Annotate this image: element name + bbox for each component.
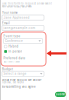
staticText: Hybrid (8, 45, 18, 48)
staticText: Your name (2, 11, 18, 14)
staticText: jane@example.com (4, 26, 36, 30)
staticText: Budget (2, 68, 13, 71)
staticText: Event type (3, 35, 20, 38)
staticText: By submitting you agree (2, 85, 36, 88)
staticText: dd / mm / yyyy (3, 60, 19, 63)
staticText: Optional, but helpful (2, 81, 24, 84)
button[interactable]: jane@example.com (2, 25, 44, 31)
button[interactable]: Hybrid (4, 45, 41, 48)
staticText: In person (8, 50, 22, 53)
button[interactable]: Submit (55, 92, 66, 97)
button[interactable]: In person (4, 50, 41, 53)
staticText: Conference (5, 39, 23, 43)
staticText: Preferred date (3, 57, 25, 60)
button[interactable]: Jane Appleseed (2, 15, 44, 20)
staticText: What else should we know? (2, 78, 41, 82)
button[interactable]: Conference (3, 38, 42, 44)
staticText: Jane Appleseed (4, 16, 30, 19)
button[interactable]: Select a range (2, 71, 44, 76)
staticText: Email (2, 22, 10, 25)
staticText: Use this form to request a new event for… (2, 2, 52, 8)
staticText: will reply in two days. (2, 4, 32, 7)
staticText: Select a range (4, 72, 27, 75)
staticText: Submit (55, 93, 65, 96)
